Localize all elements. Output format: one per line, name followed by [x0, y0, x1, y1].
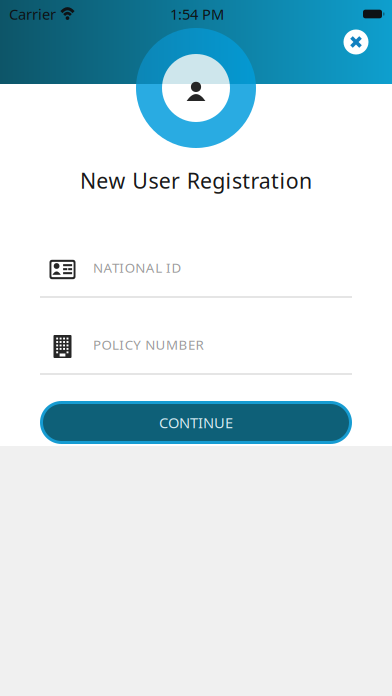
staticText: POLICY NUMBER — [93, 336, 203, 353]
staticText: NATIONAL ID — [93, 259, 181, 276]
button[interactable]: POLICY NUMBER — [0, 0, 392, 696]
staticText: New User Registration — [80, 166, 312, 195]
staticText: 1:54 PM — [170, 4, 224, 24]
staticText: CONTINUE — [159, 413, 233, 432]
button[interactable]: Close — [336, 22, 376, 62]
button[interactable]: NATIONAL ID — [0, 0, 392, 696]
staticText: Carrier — [9, 4, 56, 24]
button[interactable]: CONTINUE — [40, 401, 352, 444]
